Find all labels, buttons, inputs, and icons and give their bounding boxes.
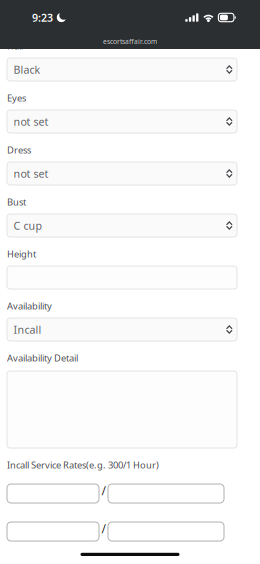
staticText: 9:23 xyxy=(32,10,53,25)
staticText: / xyxy=(101,482,105,498)
button[interactable]: Bust xyxy=(7,214,237,237)
button[interactable]: Hair xyxy=(7,58,237,81)
staticText: Dress xyxy=(7,144,31,156)
staticText: not set xyxy=(13,166,48,181)
button[interactable]: escortsaffair.com xyxy=(103,37,157,46)
staticText: C cup xyxy=(13,218,42,233)
button[interactable]: Dress xyxy=(7,162,237,185)
button[interactable]: Incall rate 2 duration xyxy=(108,522,224,541)
staticText: Incall Service Rates(e.g. 300/1 Hour) xyxy=(7,459,159,471)
button[interactable]: Incall rate 1 price xyxy=(7,484,99,503)
button[interactable]: Availability xyxy=(7,318,237,341)
staticText: Bust xyxy=(7,196,26,208)
button[interactable]: Incall rate 1 duration xyxy=(108,484,224,503)
button[interactable]: Incall rate 2 price xyxy=(7,522,99,541)
staticText: Availability Detail xyxy=(7,352,78,364)
staticText: / xyxy=(101,520,105,536)
staticText: Availability xyxy=(7,300,52,312)
button[interactable]: Eyes xyxy=(7,110,237,133)
staticText: Hair xyxy=(7,40,25,52)
staticText: Incall xyxy=(13,322,41,337)
staticText: Eyes xyxy=(7,92,26,104)
staticText: Black xyxy=(13,62,40,77)
button[interactable]: Height xyxy=(7,266,237,289)
staticText: Height xyxy=(7,248,36,260)
staticText: not set xyxy=(13,114,48,129)
staticText: escortsaffair.com xyxy=(103,37,157,46)
